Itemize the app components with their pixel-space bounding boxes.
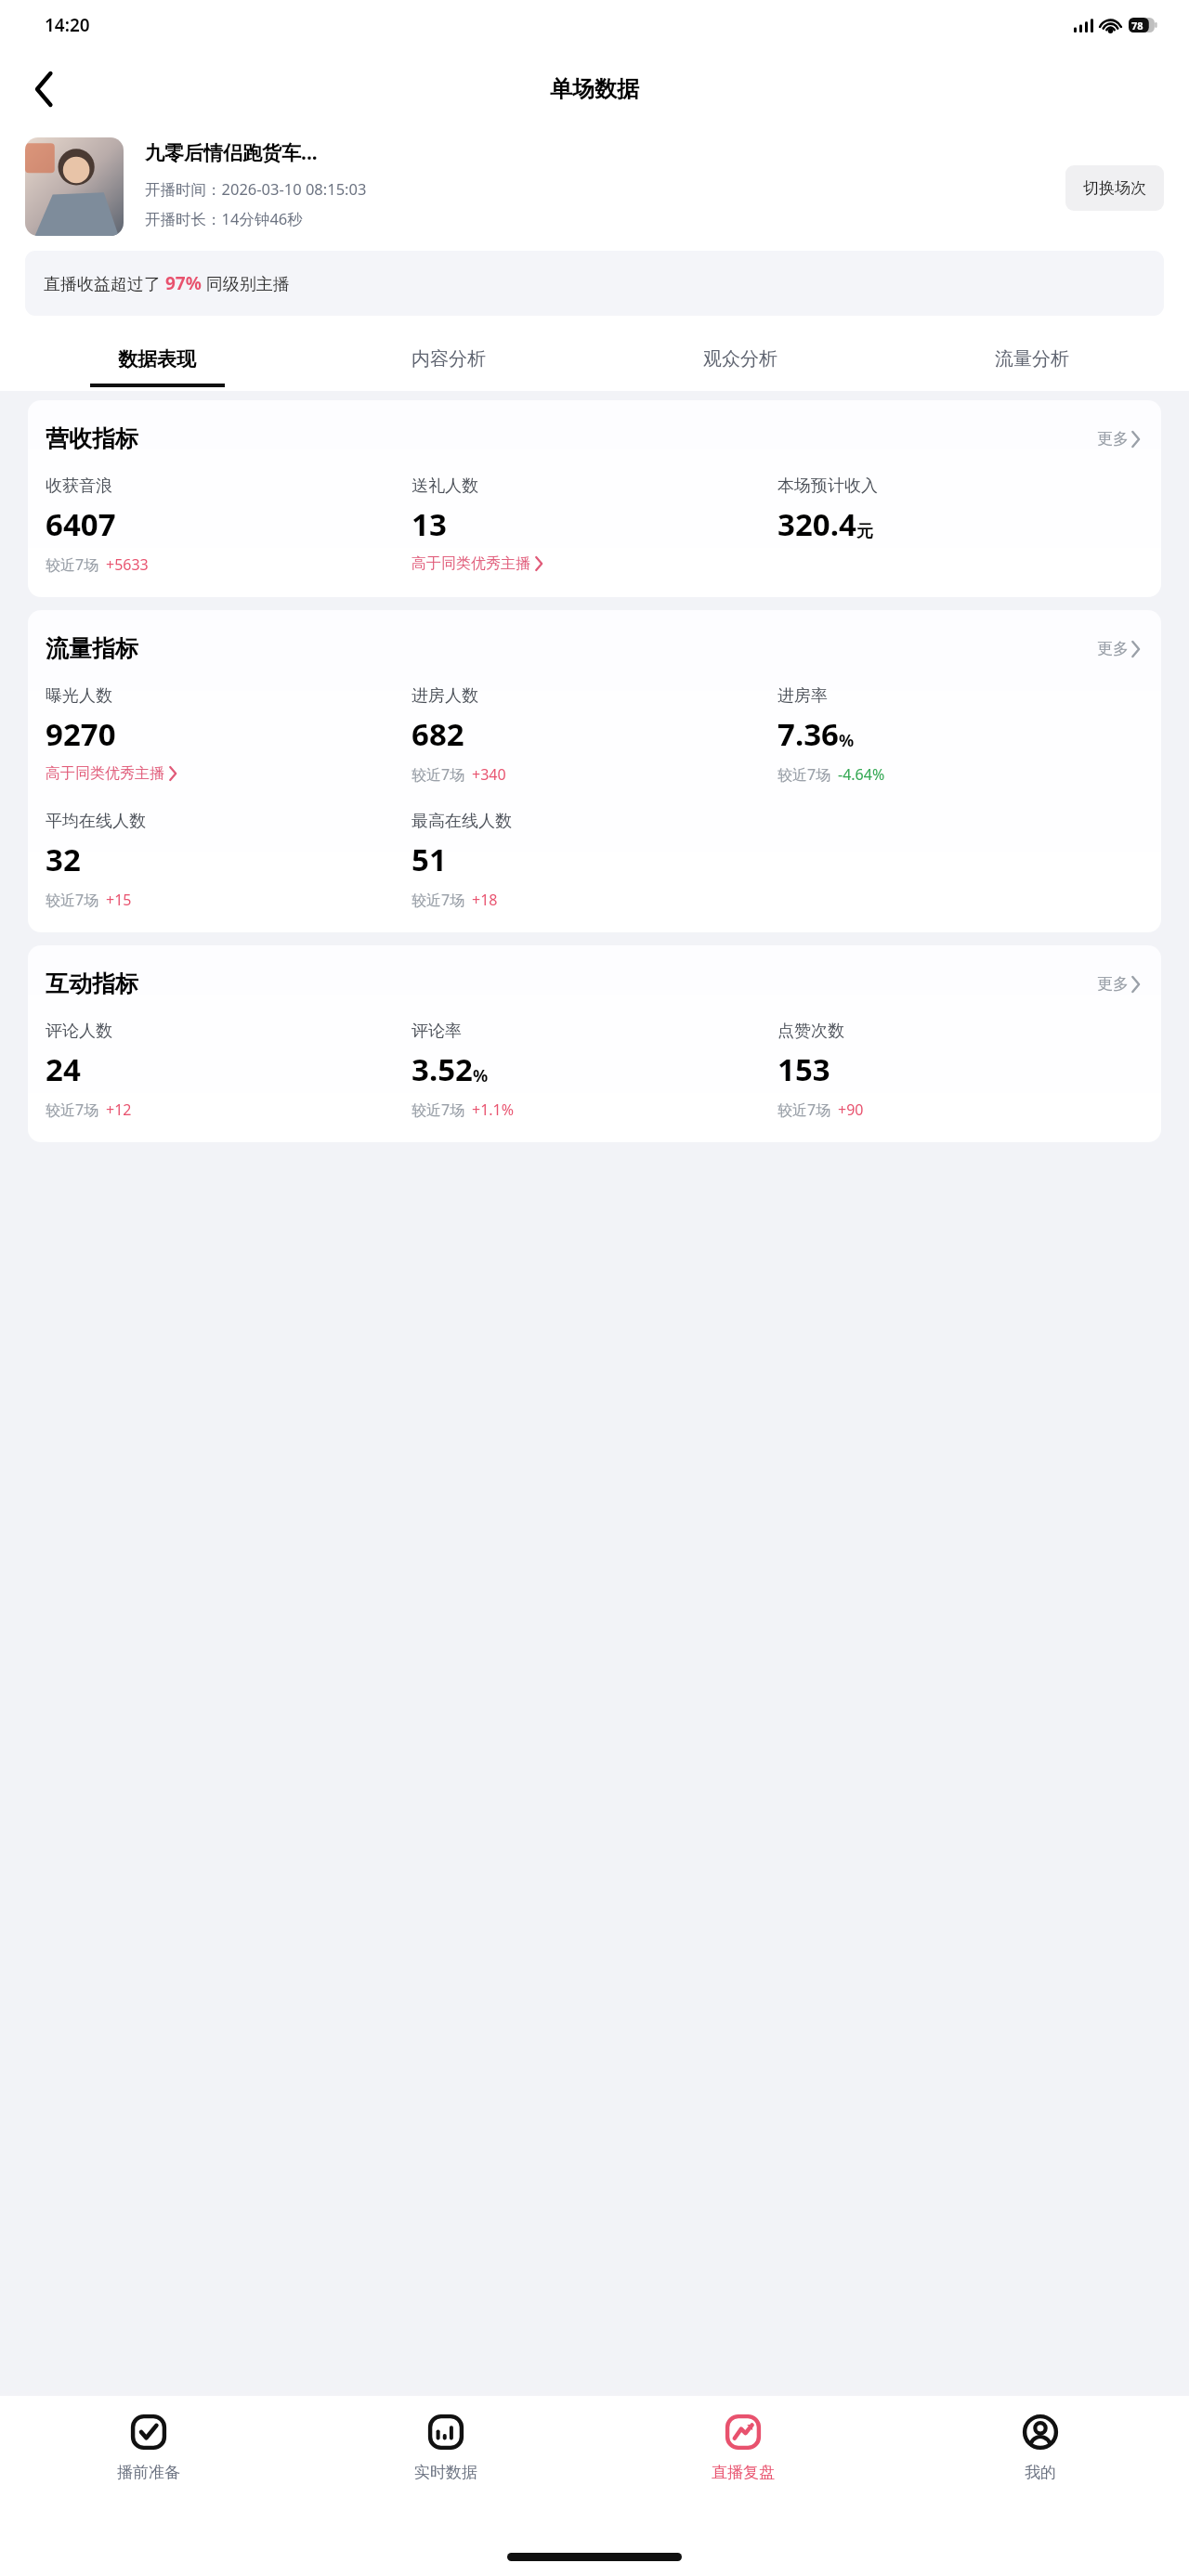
staticText: 较近7场 — [777, 1099, 831, 1120]
button[interactable]: Back — [19, 63, 71, 115]
button[interactable]: 数据表现 — [11, 331, 303, 391]
staticText: 更多 — [1097, 974, 1129, 994]
staticText: 320.4 — [777, 503, 856, 545]
staticText: 互动指标 — [46, 969, 138, 998]
staticText: 内容分析 — [412, 347, 486, 371]
button[interactable]: 切换场次 — [1065, 165, 1164, 211]
staticText: 切换场次 — [1083, 178, 1146, 198]
staticText: 送礼人数 — [412, 475, 478, 497]
staticText: 营收指标 — [46, 424, 138, 453]
staticText: 流量分析 — [995, 347, 1069, 371]
staticText: +90 — [838, 1099, 864, 1120]
staticText: 评论率 — [412, 1021, 462, 1042]
staticText: 9270 — [46, 713, 116, 755]
other: 实时数据 — [426, 2413, 465, 2452]
staticText: 24 — [46, 1048, 81, 1090]
other: 播前准备 — [129, 2413, 168, 2452]
staticText: 曝光人数 — [46, 685, 112, 707]
staticText: 收获音浪 — [46, 475, 112, 497]
staticText: % — [839, 729, 855, 752]
staticText: 7.36 — [777, 713, 839, 755]
staticText: 6407 — [46, 503, 116, 545]
staticText: -4.64% — [838, 764, 885, 785]
staticText: +1.1% — [472, 1099, 515, 1120]
staticText: 更多 — [1097, 639, 1129, 658]
button[interactable]: 直播复盘 — [594, 2396, 892, 2482]
button[interactable]: 我的 — [892, 2396, 1189, 2482]
staticText: 13 — [412, 503, 447, 545]
button[interactable]: 观众分析 — [594, 331, 886, 390]
staticText: 播前准备 — [117, 2463, 180, 2482]
button[interactable]: 高于同类优秀主播 — [412, 554, 542, 573]
staticText: 九零后情侣跑货车... — [145, 139, 318, 166]
button[interactable]: 高于同类优秀主播 — [46, 764, 176, 783]
staticText: 较近7场 — [412, 764, 465, 785]
staticText: 点赞次数 — [777, 1021, 844, 1042]
button[interactable]: Anchor avatar — [25, 137, 124, 236]
staticText: 进房人数 — [412, 685, 478, 707]
staticText: 观众分析 — [703, 347, 777, 371]
staticText: 评论人数 — [46, 1021, 112, 1042]
staticText: +18 — [472, 890, 498, 910]
staticText: 较近7场 — [412, 890, 465, 910]
staticText: +340 — [472, 764, 506, 785]
staticText: 高于同类优秀主播 — [412, 554, 530, 573]
staticText: 最高在线人数 — [412, 811, 512, 832]
button[interactable]: 更多 — [1093, 425, 1143, 452]
staticText: 更多 — [1097, 429, 1129, 449]
staticText: 较近7场 — [46, 1099, 99, 1120]
staticText: 14:20 — [45, 13, 90, 37]
staticText: 实时数据 — [414, 2463, 477, 2482]
staticText: 进房率 — [777, 685, 828, 707]
staticText: 开播时长：14分钟46秒 — [145, 208, 303, 229]
staticText: 较近7场 — [412, 1099, 465, 1120]
staticText: 较近7场 — [46, 890, 99, 910]
button[interactable]: 直播收益超过了 — [25, 251, 1164, 316]
staticText: 单场数据 — [550, 75, 639, 103]
staticText: +12 — [106, 1099, 132, 1120]
staticText: % — [473, 1064, 489, 1087]
staticText: +5633 — [106, 554, 149, 575]
staticText: 78 — [1131, 19, 1143, 33]
staticText: 153 — [777, 1048, 830, 1090]
staticText: 平均在线人数 — [46, 811, 146, 832]
button[interactable]: 内容分析 — [303, 331, 594, 390]
staticText: 直播复盘 — [712, 2463, 775, 2482]
staticText: 流量指标 — [46, 634, 138, 663]
staticText: 开播时间：2026-03-10 08:15:03 — [145, 178, 367, 200]
button[interactable]: 更多 — [1093, 635, 1143, 662]
staticText: 32 — [46, 839, 81, 880]
staticText: 3.52 — [412, 1048, 473, 1090]
staticText: 同级别主播 — [202, 272, 290, 295]
other: 直播复盘 — [724, 2413, 763, 2452]
staticText: +15 — [106, 890, 132, 910]
staticText: 高于同类优秀主播 — [46, 764, 164, 783]
button[interactable]: 更多 — [1093, 970, 1143, 997]
staticText: 97% — [165, 271, 202, 295]
staticText: 682 — [412, 713, 464, 755]
staticText: 直播收益超过了 — [44, 272, 165, 295]
staticText: 51 — [412, 839, 447, 880]
button[interactable]: 播前准备 — [0, 2396, 297, 2482]
other: 我的 — [1021, 2413, 1060, 2452]
button[interactable]: 实时数据 — [297, 2396, 594, 2482]
button[interactable]: 流量分析 — [886, 331, 1178, 390]
staticText: 本场预计收入 — [777, 475, 878, 497]
staticText: 元 — [856, 521, 873, 542]
staticText: 我的 — [1025, 2463, 1056, 2482]
staticText: 数据表现 — [118, 347, 196, 371]
staticText: 较近7场 — [777, 764, 831, 785]
staticText: 较近7场 — [46, 554, 99, 575]
